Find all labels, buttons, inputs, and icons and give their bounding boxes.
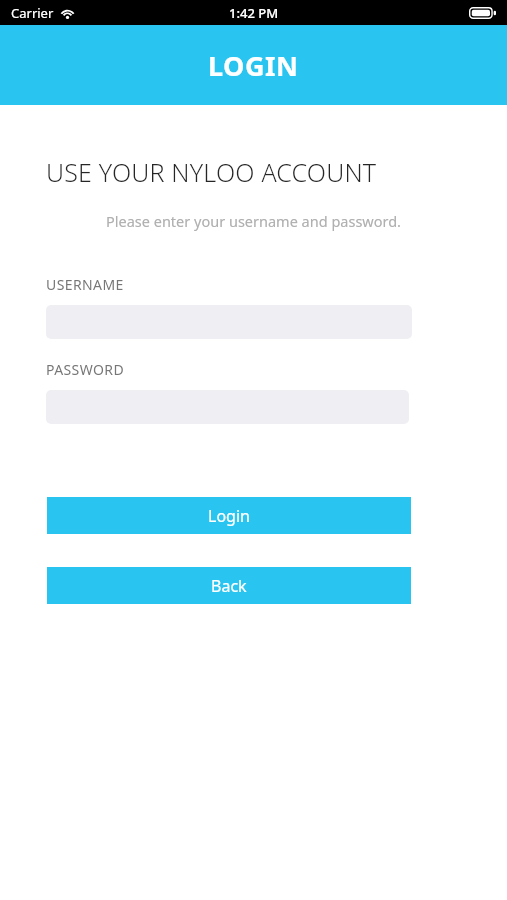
staticText: Back — [211, 575, 247, 597]
button[interactable]: Back — [47, 567, 411, 604]
staticText: 1:42 PM — [229, 4, 279, 22]
staticText: Carrier — [11, 4, 54, 22]
staticText: Please enter your username and password. — [24, 211, 483, 231]
staticText: PASSWORD — [46, 360, 125, 379]
other: Battery full — [469, 7, 496, 19]
staticText: USERNAME — [46, 275, 124, 294]
staticText: LOGIN — [208, 47, 299, 84]
staticText: USE YOUR NYLOO ACCOUNT — [46, 155, 377, 189]
other: Wi-Fi signal — [60, 8, 75, 19]
button[interactable]: Login — [47, 497, 411, 534]
staticText: Login — [208, 505, 250, 527]
